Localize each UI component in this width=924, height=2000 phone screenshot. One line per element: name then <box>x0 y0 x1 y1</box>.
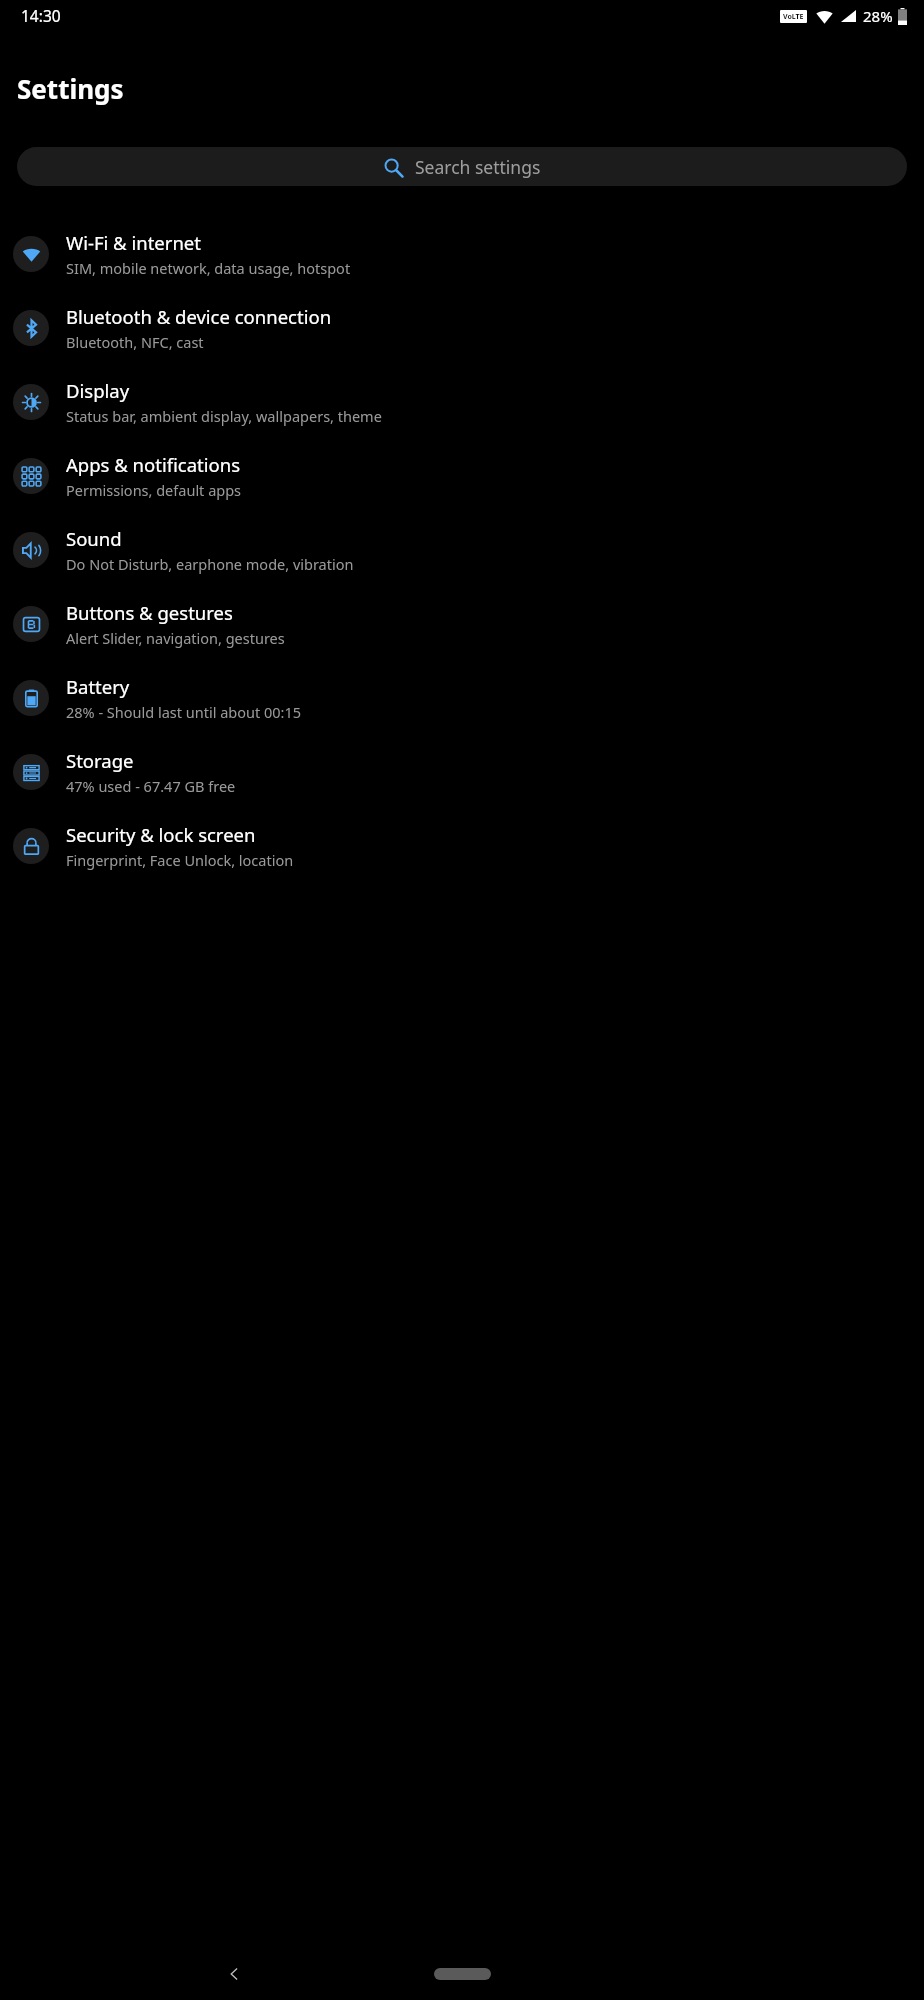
button[interactable]: Apps & notifications <box>0 439 924 513</box>
staticText: Sound <box>66 526 122 551</box>
button[interactable]: Wi-Fi & internet <box>0 217 924 291</box>
button[interactable]: Security & lock screen <box>0 809 924 883</box>
staticText: 28% - Should last until about 00:15 <box>66 702 302 722</box>
staticText: Battery <box>66 674 130 699</box>
staticText: Display <box>66 378 130 403</box>
button[interactable]: Battery <box>0 661 924 735</box>
button[interactable]: Bluetooth & device connection <box>0 291 924 365</box>
staticText: 28% <box>863 6 893 26</box>
staticText: Buttons & gestures <box>66 600 233 625</box>
staticText: VoLTE <box>783 12 804 22</box>
staticText: Bluetooth & device connection <box>66 304 332 329</box>
staticText: Search settings <box>415 155 541 179</box>
staticText: SIM, mobile network, data usage, hotspot <box>66 258 351 278</box>
button[interactable]: Home <box>426 1956 498 1992</box>
staticText: 14:30 <box>21 5 61 26</box>
staticText: Bluetooth, NFC, cast <box>66 332 204 352</box>
button[interactable]: Back <box>215 1955 253 1993</box>
button[interactable]: Display <box>0 365 924 439</box>
staticText: Wi-Fi & internet <box>66 230 201 255</box>
staticText: Fingerprint, Face Unlock, location <box>66 850 294 870</box>
staticText: Storage <box>66 748 134 773</box>
staticText: Apps & notifications <box>66 452 241 477</box>
staticText: Do Not Disturb, earphone mode, vibration <box>66 554 354 574</box>
staticText: Security & lock screen <box>66 822 256 847</box>
button[interactable]: Search settings <box>17 147 907 186</box>
staticText: Settings <box>17 71 124 106</box>
staticText: Alert Slider, navigation, gestures <box>66 628 285 648</box>
button[interactable]: Sound <box>0 513 924 587</box>
button[interactable]: Buttons & gestures <box>0 587 924 661</box>
staticText: Permissions, default apps <box>66 480 242 500</box>
staticText: 47% used - 67.47 GB free <box>66 776 236 796</box>
staticText: Status bar, ambient display, wallpapers,… <box>66 406 382 426</box>
button[interactable]: Storage <box>0 735 924 809</box>
